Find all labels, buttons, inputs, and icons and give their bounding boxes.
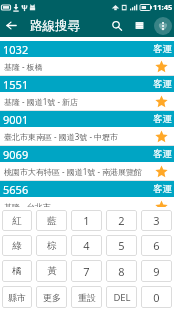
button[interactable]: 9069 bbox=[0, 146, 174, 181]
staticText: 9 bbox=[153, 264, 160, 279]
button[interactable]: 藍 bbox=[36, 210, 67, 231]
staticText: 8 bbox=[118, 264, 125, 279]
staticText: 9069 bbox=[3, 147, 29, 162]
staticText: 基隆 - 板橋 bbox=[4, 61, 155, 72]
staticText: 1032 bbox=[3, 42, 29, 57]
staticText: 5656 bbox=[3, 182, 29, 197]
staticText: 0 bbox=[153, 290, 160, 305]
staticText: 6 bbox=[153, 238, 160, 253]
staticText: 桃園市大有特區 - 國道1號 - 南港展覽館 bbox=[4, 166, 155, 177]
staticText: 4 bbox=[83, 238, 90, 253]
staticText: 客運 bbox=[153, 148, 172, 160]
button[interactable]: 7 bbox=[71, 260, 102, 282]
button[interactable]: 重設 bbox=[71, 286, 102, 308]
staticText: 5 bbox=[118, 238, 125, 253]
button[interactable]: 3 bbox=[141, 210, 172, 231]
button[interactable]: 2 bbox=[106, 210, 137, 231]
button[interactable]: Search bbox=[105, 14, 128, 37]
button[interactable]: 黃 bbox=[36, 260, 67, 282]
button[interactable]: 更多 bbox=[36, 286, 67, 308]
staticText: 綠 bbox=[12, 240, 22, 252]
staticText: 1551 bbox=[3, 77, 29, 92]
button[interactable]: DEL bbox=[106, 286, 137, 308]
staticText: 客運 bbox=[153, 43, 172, 55]
staticText: DEL bbox=[113, 291, 131, 304]
button[interactable]: 8 bbox=[106, 260, 137, 282]
staticText: 縣市 bbox=[8, 292, 26, 303]
button[interactable]: 9001 bbox=[0, 111, 174, 146]
staticText: 7 bbox=[83, 264, 90, 279]
button[interactable]: 9 bbox=[141, 260, 172, 282]
button[interactable]: 紅 bbox=[2, 210, 32, 231]
staticText: 路線搜尋 bbox=[30, 18, 80, 34]
staticText: 11:45 bbox=[153, 2, 173, 12]
staticText: 2 bbox=[118, 213, 125, 228]
button[interactable]: List view bbox=[128, 14, 151, 37]
button[interactable]: More options bbox=[151, 14, 174, 37]
button[interactable]: 棕 bbox=[36, 235, 67, 256]
staticText: 1 bbox=[83, 213, 90, 228]
staticText: 基隆 - 台北市 bbox=[4, 201, 155, 212]
staticText: 棕 bbox=[47, 240, 57, 252]
staticText: 重設 bbox=[78, 292, 96, 303]
staticText: 藍 bbox=[47, 215, 57, 227]
button[interactable]: Back bbox=[0, 14, 23, 37]
staticText: 臺北市東南區 - 國道3號 - 中壢市 bbox=[4, 131, 155, 142]
button[interactable]: 0 bbox=[141, 286, 172, 308]
staticText: 基隆 - 國道1號 - 新店 bbox=[4, 96, 155, 107]
staticText: 客運 bbox=[153, 113, 172, 125]
staticText: 3 bbox=[153, 213, 160, 228]
staticText: 9001 bbox=[3, 112, 29, 127]
button[interactable]: 縣市 bbox=[2, 286, 32, 308]
staticText: 客運 bbox=[153, 78, 172, 90]
button[interactable]: 綠 bbox=[2, 235, 32, 256]
button[interactable]: 1 bbox=[71, 210, 102, 231]
staticText: 橘 bbox=[12, 265, 22, 277]
staticText: 客運 bbox=[153, 183, 172, 195]
button[interactable]: 橘 bbox=[2, 260, 32, 282]
button[interactable]: 5 bbox=[106, 235, 137, 256]
button[interactable]: 1032 bbox=[0, 41, 174, 76]
button[interactable]: 1551 bbox=[0, 76, 174, 111]
button[interactable]: 6 bbox=[141, 235, 172, 256]
staticText: 黃 bbox=[47, 265, 57, 277]
button[interactable]: 4 bbox=[71, 235, 102, 256]
staticText: 更多 bbox=[43, 292, 61, 303]
button[interactable]: 5656 bbox=[0, 181, 174, 216]
staticText: 紅 bbox=[12, 215, 22, 227]
